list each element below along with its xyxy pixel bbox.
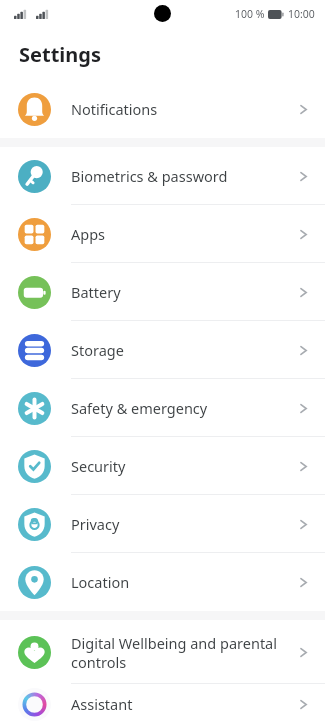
staticText: Storage: [71, 340, 288, 360]
button[interactable]: Digital Wellbeing and parental controls: [0, 620, 325, 684]
button[interactable]: Security: [0, 437, 325, 495]
button[interactable]: Apps: [0, 205, 325, 263]
staticText: Safety & emergency: [71, 398, 288, 418]
staticText: 100 %: [235, 7, 265, 21]
staticText: Biometrics & password: [71, 166, 288, 186]
staticText: Privacy: [71, 514, 288, 534]
staticText: Settings: [19, 41, 101, 68]
button[interactable]: Safety & emergency: [0, 379, 325, 437]
staticText: Apps: [71, 224, 288, 244]
staticText: Location: [71, 572, 288, 592]
button[interactable]: Privacy: [0, 495, 325, 553]
button[interactable]: Biometrics & password: [0, 147, 325, 205]
staticText: Battery: [71, 282, 288, 302]
staticText: Security: [71, 456, 288, 476]
button[interactable]: Battery: [0, 263, 325, 321]
staticText: Assistant: [71, 694, 288, 714]
button[interactable]: Storage: [0, 321, 325, 379]
staticText: Notifications: [71, 99, 288, 119]
button[interactable]: Assistant: [0, 684, 325, 724]
staticText: 10:00: [288, 7, 315, 21]
button[interactable]: Location: [0, 553, 325, 611]
button[interactable]: Notifications: [0, 80, 325, 138]
staticText: Digital Wellbeing and parental controls: [71, 633, 288, 672]
